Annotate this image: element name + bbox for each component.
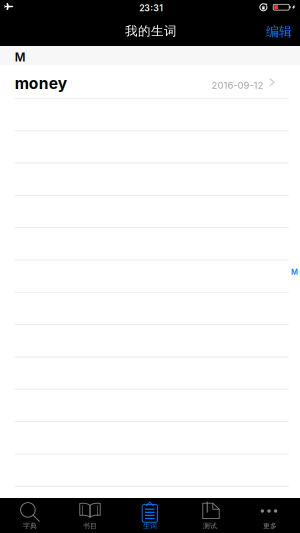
staticText: 生词 — [143, 522, 157, 530]
staticText: M — [15, 50, 26, 64]
staticText: 测试 — [203, 522, 217, 530]
button[interactable]: 编辑 — [242, 24, 292, 40]
staticText: 2016-09-12 — [211, 80, 263, 91]
button[interactable]: M — [289, 267, 300, 278]
button[interactable]: 生词 — [120, 498, 180, 533]
button[interactable]: money — [0, 65, 300, 98]
staticText: 书目 — [83, 522, 97, 530]
button[interactable]: 字典 — [0, 498, 60, 533]
staticText: M — [291, 268, 298, 277]
staticText: 我的生词 — [125, 23, 177, 39]
staticText: 更多 — [263, 522, 277, 530]
button[interactable]: 书目 — [60, 498, 120, 533]
button[interactable]: 测试 — [180, 498, 240, 533]
staticText: 编辑 — [266, 23, 292, 40]
staticText: 字典 — [23, 522, 37, 530]
staticText: 23:31 — [139, 3, 163, 13]
button[interactable]: 更多 — [240, 498, 300, 533]
staticText: money — [15, 74, 67, 93]
